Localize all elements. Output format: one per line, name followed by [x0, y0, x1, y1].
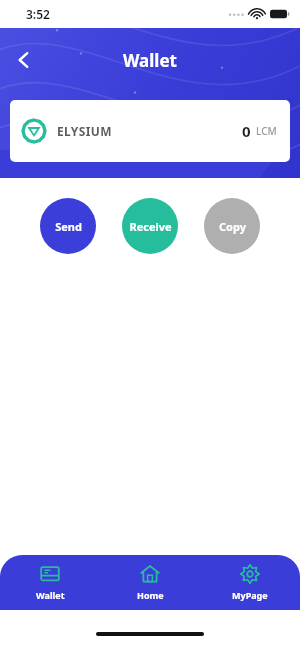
button[interactable]: Wallet [0, 555, 100, 610]
staticText: Home [137, 589, 164, 601]
button[interactable]: Send [40, 198, 96, 254]
staticText: 3:52 [26, 6, 50, 22]
button[interactable]: ELYSIUM [10, 100, 290, 162]
staticText: 0 [242, 121, 251, 141]
button[interactable]: Home [100, 555, 200, 610]
button[interactable]: Receive [122, 198, 178, 254]
button[interactable]: MyPage [200, 555, 300, 610]
staticText: Wallet [123, 49, 177, 72]
staticText: MyPage [232, 589, 268, 601]
staticText: ELYSIUM [57, 123, 113, 139]
staticText: Receive [129, 219, 172, 234]
staticText: Send [55, 219, 82, 234]
staticText: Copy [219, 219, 246, 234]
button[interactable]: Copy [204, 198, 260, 254]
staticText: LCM [256, 124, 277, 138]
staticText: Wallet [36, 589, 65, 601]
button[interactable]: Back [4, 40, 44, 80]
